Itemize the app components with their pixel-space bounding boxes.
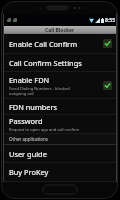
button[interactable]: Buy ProKey: [4, 163, 116, 182]
staticText: Other applications: [9, 136, 48, 142]
staticText: Enable Call Confirm: [9, 39, 78, 49]
staticText: Enable FDN: [9, 75, 50, 85]
button[interactable]: FDN numbers: [4, 99, 116, 115]
staticText: Fixed Dialing Numbers - blocked outgoing…: [9, 86, 70, 96]
staticText: Password: [9, 116, 43, 126]
other: Home: [43, 185, 77, 194]
other: Toggle: [103, 81, 112, 90]
button[interactable]: Call Confirm Settings: [4, 54, 116, 72]
staticText: Call Confirm Settings: [9, 58, 82, 68]
staticText: FDN numbers: [9, 102, 58, 112]
button[interactable]: Enable Call Confirm: [4, 34, 116, 54]
staticText: Request to open app and call confirm: [9, 127, 80, 132]
staticText: Call Blocker: [45, 27, 75, 34]
button[interactable]: Enable FDN: [4, 72, 116, 99]
button[interactable]: Password: [4, 115, 116, 134]
staticText: User guide: [9, 149, 47, 159]
staticText: 8:55: [105, 17, 115, 24]
staticText: Buy ProKey: [9, 167, 49, 177]
other: Toggle: [103, 39, 112, 48]
button[interactable]: User guide: [4, 145, 116, 163]
